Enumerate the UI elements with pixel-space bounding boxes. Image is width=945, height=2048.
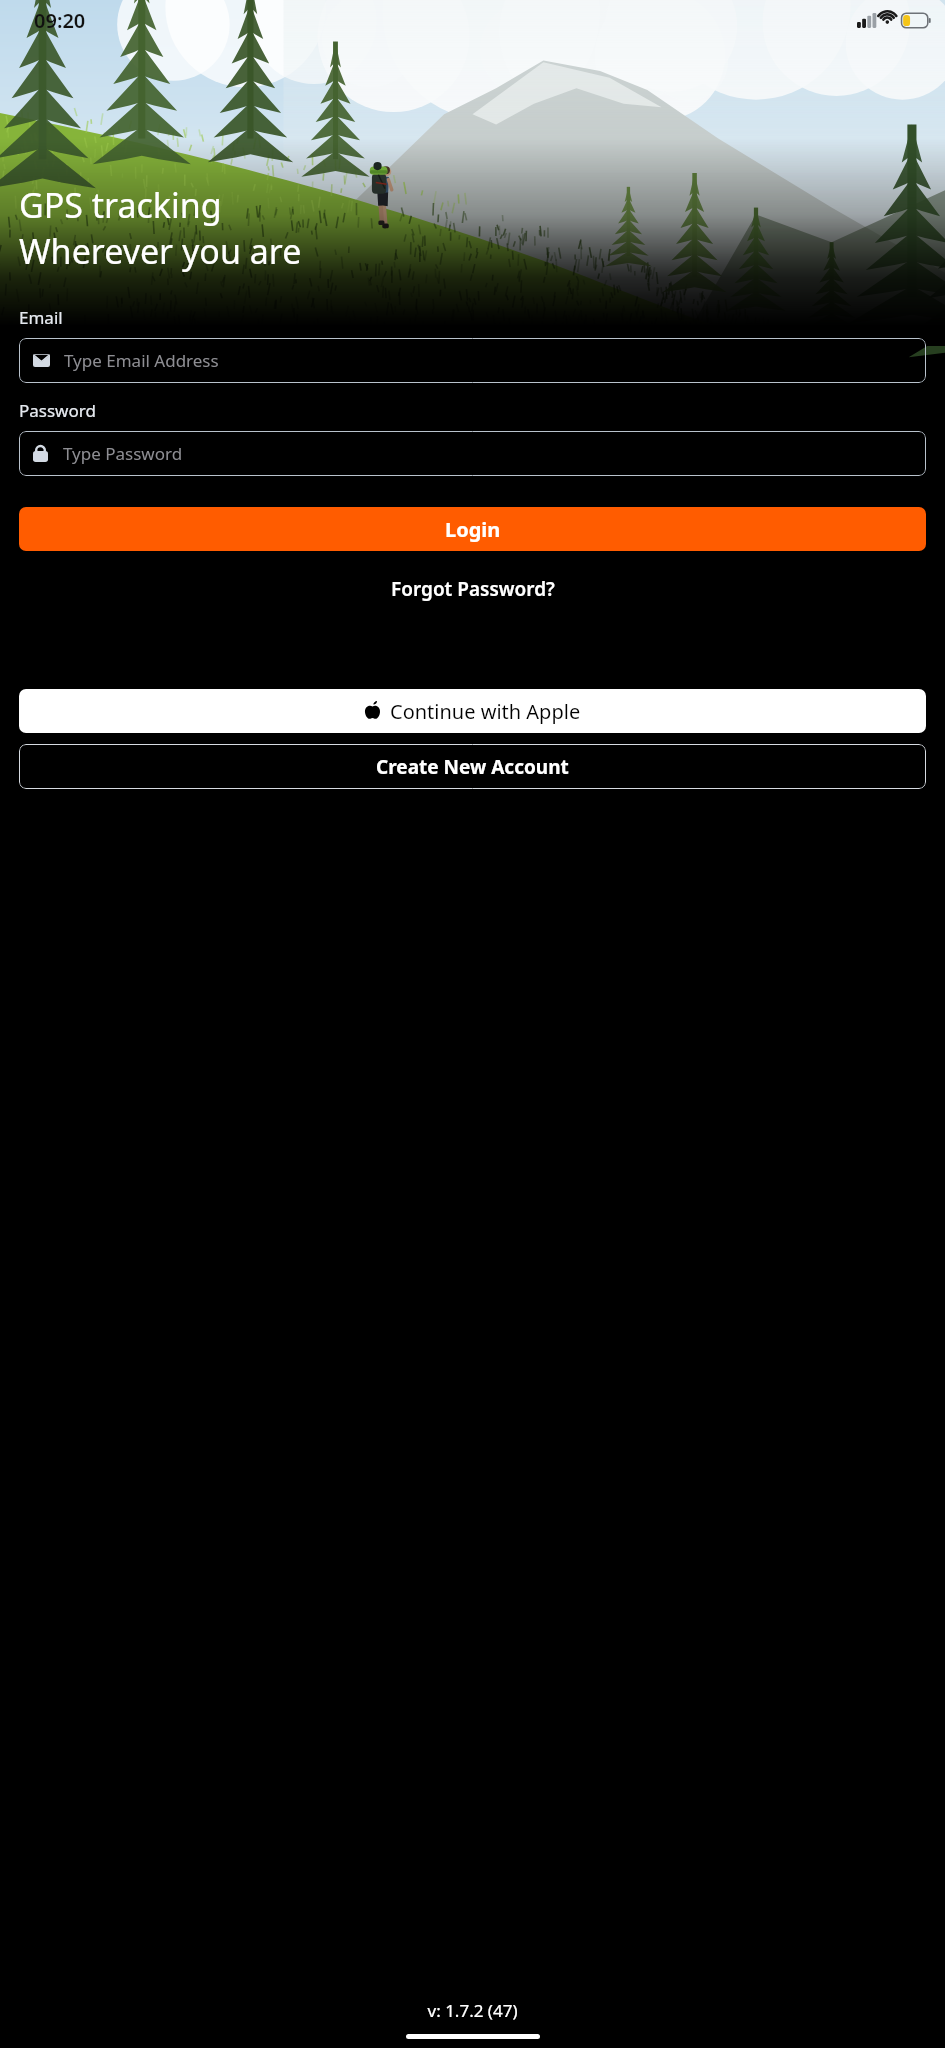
staticText: Continue with Apple	[390, 698, 581, 725]
button[interactable]: Type Email Address	[19, 338, 926, 383]
staticText: Forgot Password?	[391, 576, 555, 602]
button[interactable]: Continue with Apple	[19, 689, 926, 733]
button[interactable]: Create New Account	[19, 744, 926, 789]
button[interactable]: Forgot Password?	[381, 572, 565, 606]
staticText: Type Email Address	[64, 349, 219, 372]
staticText: Email	[19, 306, 63, 329]
staticText: Create New Account	[376, 754, 569, 780]
staticText: Password	[19, 399, 96, 422]
staticText: GPS tracking	[19, 182, 222, 228]
button[interactable]: Login	[19, 507, 926, 551]
staticText: v: 1.7.2 (47)	[0, 1999, 945, 2022]
button[interactable]: Type Password	[19, 431, 926, 476]
staticText: Login	[445, 516, 501, 543]
staticText: Wherever you are	[19, 228, 302, 274]
staticText: 09:20	[34, 7, 86, 34]
staticText: Type Password	[63, 442, 183, 465]
